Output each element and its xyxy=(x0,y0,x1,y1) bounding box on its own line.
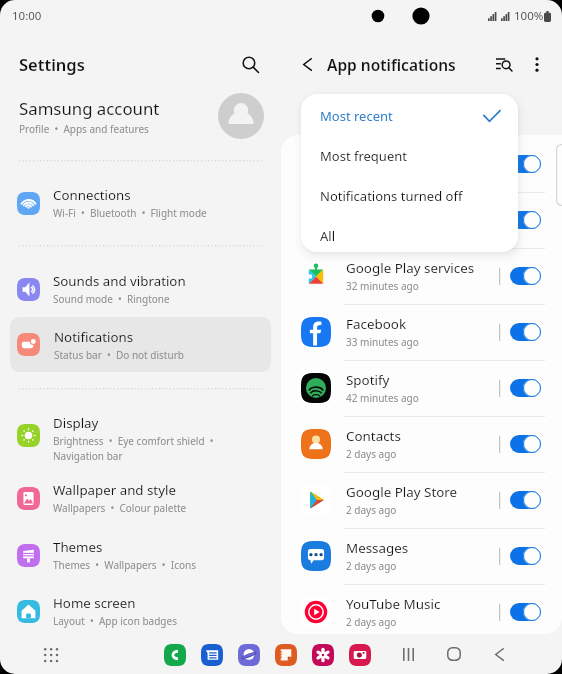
staticText: 2 days ago xyxy=(346,503,397,517)
staticText: Status bar • Do not disturb xyxy=(54,348,184,362)
staticText: 100% xyxy=(514,8,544,24)
button[interactable]: Search xyxy=(233,47,267,81)
staticText: Google Play Store xyxy=(346,483,458,501)
button[interactable]: Toggle notifications xyxy=(510,491,541,509)
staticText: Wallpaper and style xyxy=(53,481,176,499)
staticText: App notifications xyxy=(327,54,456,75)
button[interactable]: More options xyxy=(521,48,553,80)
button[interactable]: App 3 xyxy=(230,636,267,673)
button[interactable]: Themes xyxy=(0,533,281,577)
button[interactable]: Wallpaper and style xyxy=(0,476,281,520)
staticText: Themes • Wallpapers • Icons xyxy=(53,558,197,572)
button[interactable]: Gmail xyxy=(281,136,562,192)
staticText: 2 days ago xyxy=(346,615,397,629)
staticText: 2 days ago xyxy=(346,559,397,573)
button[interactable]: Google Play services xyxy=(281,248,562,304)
button[interactable]: Most frequent xyxy=(301,136,518,176)
button[interactable]: Home screen xyxy=(0,589,281,633)
staticText: Gmail xyxy=(346,147,383,165)
button[interactable]: App 4 xyxy=(267,636,304,673)
button[interactable]: Apps xyxy=(34,638,66,670)
staticText: Brightness • Eye comfort shield • xyxy=(53,434,214,448)
button[interactable]: Sounds and vibration xyxy=(0,267,281,311)
button[interactable]: Toggle notifications xyxy=(510,211,541,229)
staticText: YouTube Music xyxy=(346,595,441,613)
staticText: Samsung account xyxy=(19,97,160,120)
staticText: Wallpapers • Colour palette xyxy=(53,501,187,515)
staticText: Facebook xyxy=(346,315,407,333)
button[interactable]: Contacts xyxy=(281,416,562,472)
button[interactable]: Toggle notifications xyxy=(510,323,541,341)
staticText: Notifications xyxy=(54,328,134,346)
button[interactable]: Facebook xyxy=(281,304,562,360)
button[interactable]: Spotify xyxy=(281,360,562,416)
staticText: Sounds and vibration xyxy=(53,272,186,290)
button[interactable]: Toggle notifications xyxy=(510,267,541,285)
button[interactable]: Toggle notifications xyxy=(510,547,541,565)
staticText: Google Play services xyxy=(346,259,475,277)
staticText: 32 minutes ago xyxy=(346,279,419,293)
button[interactable]: Toggle notifications xyxy=(510,379,541,397)
button[interactable]: Most recent xyxy=(301,96,518,136)
button[interactable]: YouTube Music xyxy=(281,584,562,634)
button[interactable]: All xyxy=(301,216,518,252)
staticText: Messages xyxy=(346,539,409,557)
button[interactable]: Messages xyxy=(281,528,562,584)
button[interactable]: Toggle notifications xyxy=(510,435,541,453)
staticText: Wi-Fi • Bluetooth • Flight mode xyxy=(53,206,207,220)
staticText: All xyxy=(320,227,336,245)
staticText: Most recent xyxy=(320,107,393,125)
staticText: Sound mode • Ringtone xyxy=(53,292,170,306)
staticText: Profile • Apps and features xyxy=(19,122,149,136)
staticText: Settings xyxy=(19,53,85,75)
button[interactable]: App 5 xyxy=(304,636,341,673)
button[interactable]: App 1 xyxy=(156,636,193,673)
staticText: 10:00 xyxy=(12,8,42,24)
button[interactable]: Recents xyxy=(389,634,429,674)
button[interactable]: Notifications turned off xyxy=(301,176,518,216)
staticText: Layout • App icon badges xyxy=(53,614,177,628)
button[interactable]: Calendar xyxy=(281,192,562,248)
staticText: Home screen xyxy=(53,594,136,612)
button[interactable]: Toggle notifications xyxy=(510,155,541,173)
staticText: Themes xyxy=(53,538,103,556)
button[interactable]: Back xyxy=(479,634,519,674)
staticText: 33 minutes ago xyxy=(346,335,419,349)
staticText: Connections xyxy=(53,186,131,204)
staticText: Display xyxy=(53,414,99,432)
staticText: Most frequent xyxy=(320,147,407,165)
staticText: 2 days ago xyxy=(346,447,397,461)
button[interactable]: Toggle notifications xyxy=(510,603,541,621)
button[interactable]: Display xyxy=(0,413,281,465)
staticText: Notifications turned off xyxy=(320,187,463,205)
button[interactable]: Connections xyxy=(0,181,281,225)
button[interactable]: Search apps xyxy=(488,48,520,80)
button[interactable]: App 6 xyxy=(341,636,378,673)
staticText: 42 minutes ago xyxy=(346,391,419,405)
button[interactable]: Notifications xyxy=(10,317,271,372)
button[interactable]: App 2 xyxy=(193,636,230,673)
button[interactable]: Home xyxy=(434,634,474,674)
staticText: Spotify xyxy=(346,371,390,389)
button[interactable]: Back xyxy=(291,48,323,80)
staticText: Contacts xyxy=(346,427,401,445)
button[interactable]: Samsung account xyxy=(0,90,281,142)
button[interactable]: Google Play Store xyxy=(281,472,562,528)
staticText: Navigation bar xyxy=(53,449,123,463)
